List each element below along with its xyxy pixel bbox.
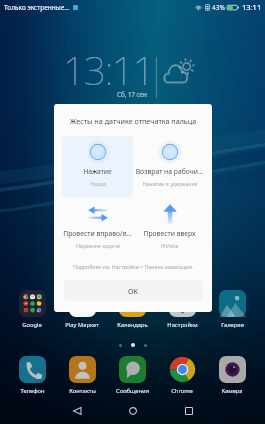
button[interactable]: OK — [64, 280, 203, 301]
button[interactable]: Камера — [207, 356, 257, 395]
staticText: Возврат на рабочий… — [135, 167, 204, 176]
staticText: Провести вправо/вл… — [63, 229, 132, 238]
staticText: Нажатие и удержание — [142, 180, 198, 187]
staticText: Сб, 17 сен — [117, 90, 147, 98]
button[interactable]: Нажатие — [62, 136, 133, 197]
button[interactable]: Провести вверх — [134, 198, 205, 253]
button[interactable]: Галерея — [207, 290, 257, 329]
button[interactable]: Настройки — [157, 290, 207, 329]
staticText: Настройки — [167, 321, 198, 329]
staticText: Google — [22, 321, 42, 329]
staticText: Play Маркет — [65, 321, 99, 329]
button[interactable]: Play Маркет — [57, 290, 107, 329]
button[interactable]: Chrome — [157, 356, 207, 395]
staticText: Камера — [221, 387, 243, 395]
button[interactable]: Провести вправо/вл… — [62, 198, 133, 253]
button[interactable]: Контакты — [57, 356, 107, 395]
staticText: Недавние задачи — [76, 242, 120, 249]
staticText: Chrome — [171, 387, 193, 395]
button[interactable]: Recent apps — [172, 398, 206, 424]
staticText: OK — [128, 286, 139, 296]
staticText: 43% — [212, 3, 225, 12]
staticText: Провести вверх — [143, 229, 196, 238]
staticText: Только экстренные… — [4, 3, 70, 12]
staticText: Контакты — [69, 387, 96, 395]
button[interactable]: Сообщения — [107, 356, 157, 395]
staticText: 13:11 — [63, 43, 154, 96]
staticText: Жесты на датчике отпечатка пальца — [54, 116, 212, 126]
button[interactable]: Google — [7, 290, 57, 329]
staticText: Календарь — [117, 321, 148, 329]
staticText: Назад — [90, 180, 106, 187]
staticText: Галерея — [221, 321, 244, 329]
button[interactable]: Возврат на рабочий… — [134, 136, 205, 197]
staticText: Телефон — [20, 387, 45, 395]
staticText: 13:11 — [242, 2, 262, 12]
button[interactable]: Home — [116, 398, 150, 424]
button[interactable]: Календарь — [107, 290, 157, 329]
staticText: Сообщения — [116, 387, 149, 395]
staticText: HiVoice — [160, 242, 179, 249]
staticText: Нажатие — [83, 167, 112, 176]
staticText: Подробнее см. Настройки > Панель навигац… — [54, 263, 212, 270]
button[interactable]: Телефон — [7, 356, 57, 395]
button[interactable]: Back — [60, 398, 94, 424]
